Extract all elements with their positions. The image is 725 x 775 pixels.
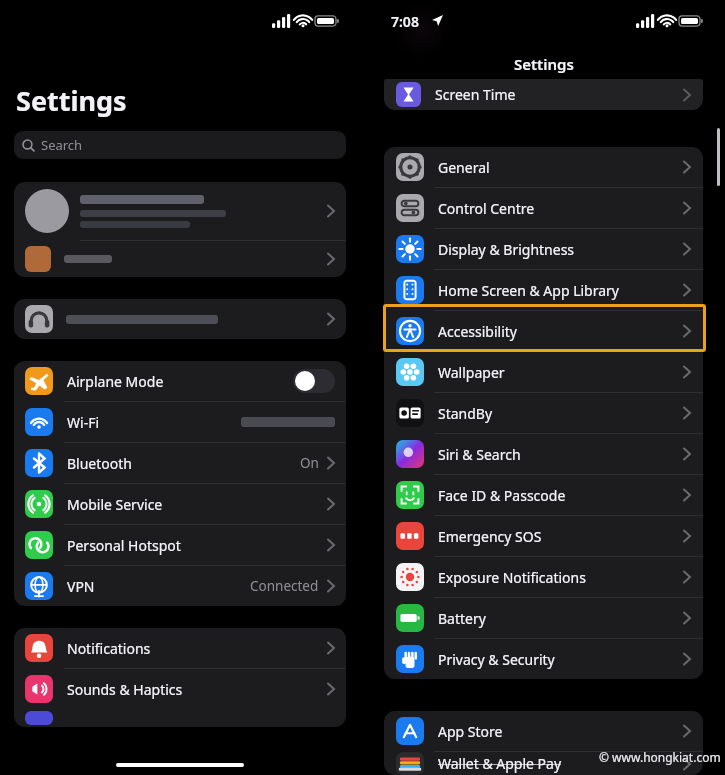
staticText: VPN <box>67 577 95 596</box>
button[interactable]: Control Centre <box>384 188 703 228</box>
button[interactable] <box>14 299 346 339</box>
staticText: Wallpaper <box>438 363 505 382</box>
staticText: Connected <box>250 577 319 595</box>
staticText: Face ID & Passcode <box>438 486 566 505</box>
staticText: Battery <box>438 609 486 628</box>
button[interactable] <box>14 241 346 277</box>
staticText: Notifications <box>67 639 151 658</box>
staticText: 7:08 <box>391 12 419 31</box>
staticText: Display & Brightness <box>438 240 575 259</box>
button[interactable]: Face ID & Passcode <box>384 475 703 515</box>
staticText: Personal Hotspot <box>67 536 181 555</box>
staticText: Home Screen & App Library <box>438 281 619 300</box>
button[interactable] <box>14 709 346 727</box>
staticText: Wallet & Apple Pay <box>438 754 562 773</box>
staticText: Siri & Search <box>438 445 521 464</box>
staticText: Screen Time <box>435 85 516 104</box>
button[interactable]: Exposure Notifications <box>384 557 703 597</box>
staticText: StandBy <box>438 404 493 423</box>
button[interactable]: Mobile Service <box>14 484 346 524</box>
staticText: On <box>300 454 319 472</box>
staticText: Accessibility <box>438 322 517 341</box>
button[interactable]: General <box>384 147 703 187</box>
button[interactable]: StandBy <box>384 393 703 433</box>
staticText: Mobile Service <box>67 495 163 514</box>
button[interactable]: Wallet & Apple Pay <box>384 752 703 775</box>
button[interactable]: Emergency SOS <box>384 516 703 556</box>
staticText: Privacy & Security <box>438 650 555 669</box>
button[interactable]: Wi-Fi <box>14 402 346 442</box>
staticText: Settings <box>16 82 127 119</box>
staticText: Control Centre <box>438 199 535 218</box>
staticText: Emergency SOS <box>438 527 542 546</box>
staticText: © www.hongkiat.com <box>599 749 721 765</box>
staticText: App Store <box>438 722 503 741</box>
button[interactable]: Wallpaper <box>384 352 703 392</box>
button[interactable]: Screen Time <box>384 79 703 110</box>
button[interactable]: Bluetooth <box>14 443 346 483</box>
staticText: Search <box>41 136 83 154</box>
staticText: Sounds & Haptics <box>67 680 183 699</box>
button[interactable]: VPN <box>14 566 346 606</box>
staticText: Airplane Mode <box>67 372 164 391</box>
button[interactable]: Search <box>14 131 346 159</box>
staticText: General <box>438 158 490 177</box>
button[interactable]: Airplane Mode <box>14 361 346 401</box>
button[interactable]: Privacy & Security <box>384 639 703 679</box>
button[interactable]: Siri & Search <box>384 434 703 474</box>
button[interactable]: App Store <box>384 711 703 751</box>
staticText: Settings <box>514 54 574 74</box>
button[interactable]: Battery <box>384 598 703 638</box>
button[interactable]: Accessibility <box>384 311 703 351</box>
button[interactable] <box>14 182 346 240</box>
button[interactable]: Home Screen & App Library <box>384 270 703 310</box>
button[interactable]: Sounds & Haptics <box>14 669 346 709</box>
staticText: Bluetooth <box>67 454 132 473</box>
staticText: Exposure Notifications <box>438 568 586 587</box>
staticText: Wi-Fi <box>67 413 100 432</box>
button[interactable] <box>293 369 335 393</box>
button[interactable]: Notifications <box>14 628 346 668</box>
button[interactable]: Personal Hotspot <box>14 525 346 565</box>
button[interactable]: Display & Brightness <box>384 229 703 269</box>
